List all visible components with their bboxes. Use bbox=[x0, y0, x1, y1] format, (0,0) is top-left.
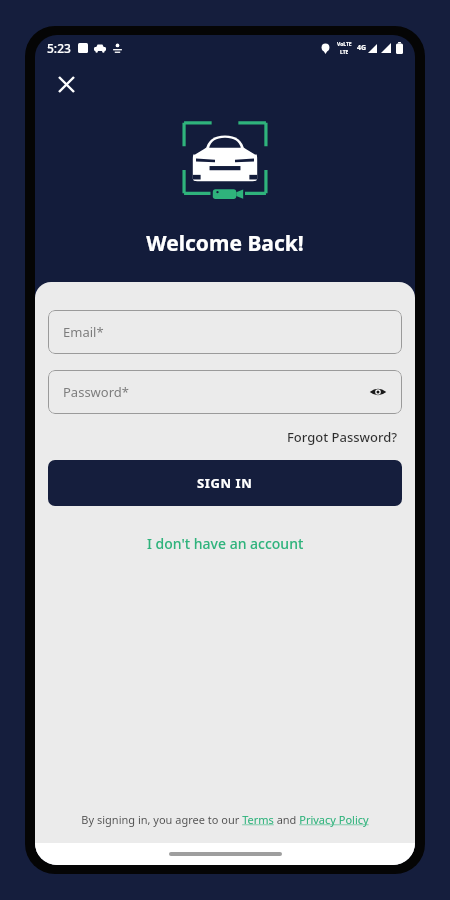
button[interactable]: I don't have an account bbox=[141, 528, 310, 559]
staticText: Welcome Back! bbox=[35, 229, 415, 258]
staticText: Forgot Password? bbox=[287, 428, 398, 446]
button[interactable]: Close bbox=[49, 67, 83, 101]
staticText: Password* bbox=[63, 383, 129, 401]
button[interactable]: Show password bbox=[366, 380, 390, 404]
staticText: 5:23 bbox=[47, 40, 71, 56]
button[interactable]: Email* bbox=[48, 310, 402, 354]
button[interactable]: SIGN IN bbox=[48, 460, 402, 506]
staticText: By signing in, you agree to our Terms an… bbox=[81, 812, 369, 827]
staticText: LTE bbox=[340, 49, 349, 56]
staticText: SIGN IN bbox=[197, 474, 253, 492]
staticText: VoLTE bbox=[337, 41, 352, 48]
button[interactable]: Forgot Password? bbox=[283, 424, 402, 450]
staticText: I don't have an account bbox=[147, 534, 304, 553]
staticText: Email* bbox=[63, 323, 104, 341]
staticText: 4G bbox=[357, 43, 367, 53]
button[interactable]: Password* bbox=[48, 370, 402, 414]
